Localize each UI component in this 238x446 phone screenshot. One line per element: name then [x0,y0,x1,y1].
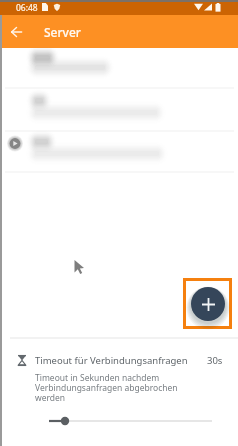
button[interactable] [5,48,234,86]
staticText: Timeout für Verbindungsanfragen [35,354,188,367]
button[interactable] [5,91,234,129]
staticText: 30s [207,354,223,367]
button[interactable]: Add [191,287,225,321]
button[interactable]: Timeout für Verbindungsanfragen [35,354,188,367]
button[interactable]: Back [0,15,33,48]
staticText: Timeout in Sekunden nachdem Verbindungsa… [35,372,178,404]
staticText: Server [44,24,81,40]
staticText: 06:48 [16,2,38,14]
button[interactable] [5,132,234,170]
